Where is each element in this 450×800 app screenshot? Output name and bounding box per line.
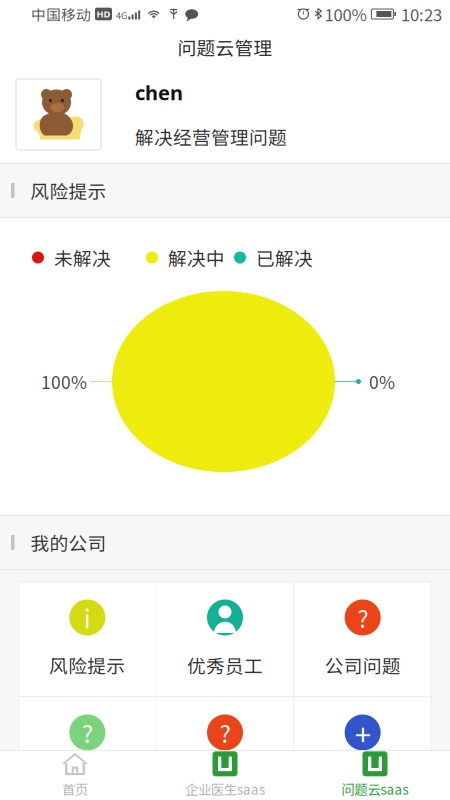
button[interactable]: + (294, 697, 431, 800)
button[interactable]: ? (19, 697, 156, 800)
staticText: 中国移动 (31, 3, 91, 25)
staticText: 已解决 (256, 244, 313, 271)
staticText: 我的公司 (30, 529, 106, 556)
button[interactable]: ? (294, 582, 431, 696)
staticText: i (84, 599, 91, 636)
staticText: 首页 (62, 779, 88, 799)
staticText: 4G (116, 8, 127, 22)
staticText: 问题云saas (341, 779, 408, 799)
staticText: 风险提示 (30, 177, 106, 204)
staticText: 10:23 (401, 2, 442, 26)
staticText: 公司问题 (325, 651, 401, 678)
staticText: 企业医生saas (185, 779, 265, 799)
staticText: 优秀员工 (187, 651, 263, 678)
staticText: ? (82, 715, 93, 750)
staticText: 0% (369, 369, 395, 394)
staticText: 解决经营管理问题 (135, 123, 287, 150)
staticText: 未解决 (54, 244, 111, 271)
staticText: ? (357, 600, 368, 635)
staticText: 我的问题 (49, 766, 125, 793)
staticText: 100% (324, 2, 366, 26)
staticText: 100% (41, 369, 87, 394)
staticText: + (355, 711, 371, 754)
staticText: 待办问题 (187, 766, 263, 793)
staticText: 新增问题 (325, 766, 401, 793)
button[interactable]: 优秀员工 (157, 582, 293, 696)
button[interactable]: 问题云saas (300, 750, 450, 800)
button[interactable]: 首页 (0, 750, 150, 800)
button[interactable]: i (19, 582, 156, 696)
button[interactable]: 企业医生saas (150, 750, 300, 800)
button[interactable]: ? (157, 697, 293, 800)
staticText: HD (96, 8, 110, 20)
staticText: 解决中 (168, 244, 225, 271)
staticText: 问题云管理 (177, 33, 272, 60)
staticText: ? (219, 715, 230, 750)
staticText: chen (135, 79, 183, 106)
staticText: 风险提示 (49, 651, 125, 678)
